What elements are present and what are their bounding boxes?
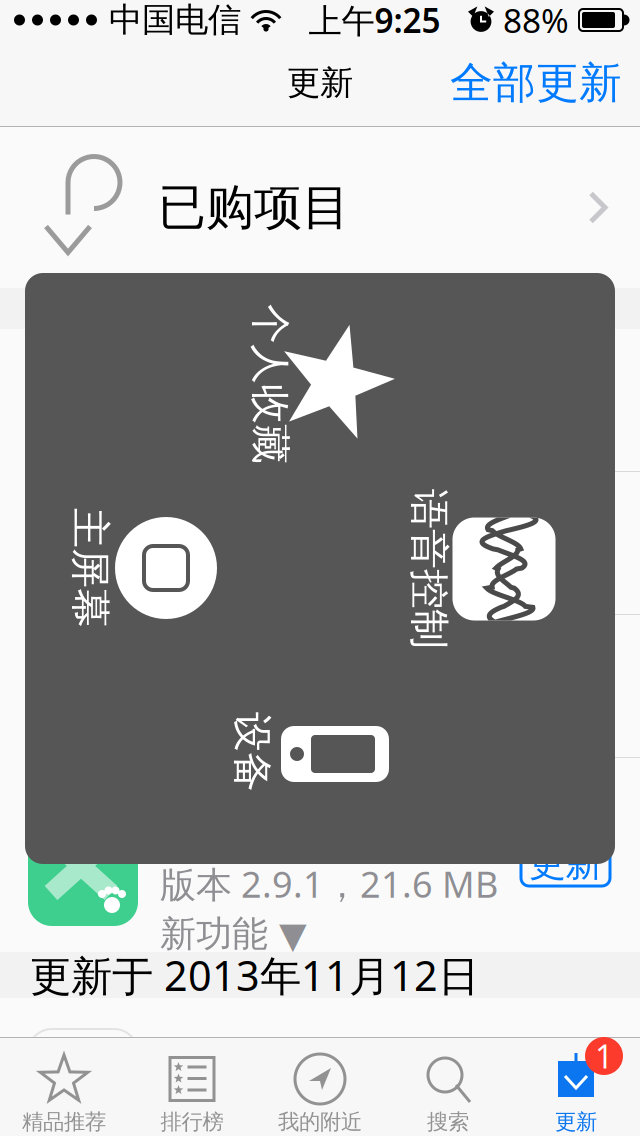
- staticText: 中国电信: [109, 0, 241, 40]
- staticText: 上午9:25: [308, 0, 440, 42]
- button[interactable]: 我的附近: [256, 1038, 384, 1136]
- staticText: 新功能 ▼: [160, 912, 307, 956]
- staticText: 排行榜: [160, 1109, 223, 1135]
- button[interactable]: 已购项目: [0, 127, 640, 288]
- button[interactable]: 精品推荐: [0, 1038, 128, 1136]
- staticText: 更新于 2013年11月12日: [30, 948, 479, 1002]
- staticText: 我的附近: [278, 1109, 362, 1135]
- button[interactable]: 排行榜: [128, 1038, 256, 1136]
- staticText: 搜索: [427, 1109, 469, 1135]
- staticText: 更新: [555, 1109, 597, 1135]
- button[interactable]: 搜索: [384, 1038, 512, 1136]
- staticText: 精品推荐: [22, 1109, 106, 1135]
- button[interactable]: 全部更新: [432, 41, 640, 125]
- button[interactable]: 个人收藏: [275, 323, 395, 443]
- staticText: 1: [595, 1035, 613, 1077]
- staticText: 全部更新: [450, 57, 622, 109]
- staticText: 个人收藏: [190, 359, 350, 408]
- button[interactable]: 设备: [281, 726, 389, 782]
- staticText: 设备: [212, 727, 292, 776]
- staticText: 版本 2.9.1，21.6 MB: [160, 860, 498, 908]
- staticText: 语音控制: [349, 544, 509, 593]
- staticText: 主屏幕: [30, 543, 150, 592]
- staticText: 已购项目: [158, 178, 350, 237]
- staticText: 更新: [287, 62, 353, 103]
- staticText: 88%: [503, 0, 569, 42]
- button[interactable]: 更新: [521, 840, 610, 886]
- staticText: 更新于 2013年11月13日: [30, 281, 479, 336]
- button[interactable]: 主屏幕: [115, 517, 217, 619]
- button[interactable]: 语音控制: [452, 517, 555, 620]
- button[interactable]: 1: [512, 1038, 640, 1136]
- staticText: 更新: [528, 840, 602, 886]
